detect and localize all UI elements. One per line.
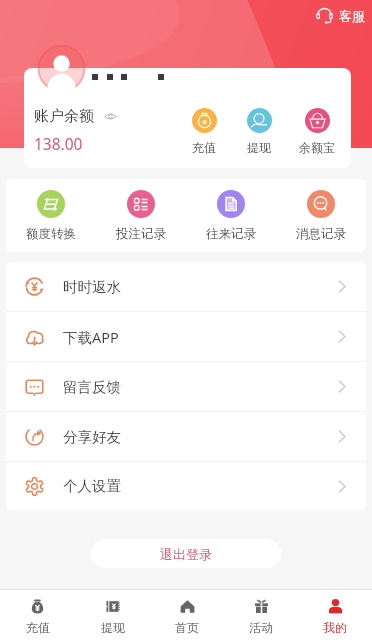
staticText: 下载APP xyxy=(63,327,119,347)
button[interactable]: 个人设置 xyxy=(6,462,366,510)
staticText: 首页 xyxy=(175,620,199,635)
staticText: 退出登录 xyxy=(160,546,212,562)
button[interactable]: 下载APP xyxy=(6,312,366,362)
button[interactable]: 客服 xyxy=(311,2,368,29)
button[interactable]: 充值 xyxy=(182,108,226,155)
button[interactable]: 首页 xyxy=(150,590,224,642)
staticText: 投注记录 xyxy=(116,226,166,242)
button[interactable]: 留言反馈 xyxy=(6,362,366,412)
staticText: 充值 xyxy=(192,140,216,155)
button[interactable]: 退出登录 xyxy=(91,539,281,568)
staticText: 往来记录 xyxy=(206,226,256,242)
staticText: 余额宝 xyxy=(299,140,335,155)
button[interactable]: 活动 xyxy=(224,590,298,642)
staticText: 138.00 xyxy=(34,133,83,154)
staticText: 留言反馈 xyxy=(63,378,121,396)
staticText: 活动 xyxy=(249,620,273,635)
staticText: 充值 xyxy=(26,620,50,635)
staticText: 我的 xyxy=(323,620,347,635)
staticText: 额度转换 xyxy=(26,226,76,242)
button[interactable]: 余额宝 xyxy=(295,108,339,155)
staticText: 提现 xyxy=(247,140,271,155)
button[interactable]: 消息记录 xyxy=(276,179,366,252)
staticText: 提现 xyxy=(101,620,125,635)
staticText: 账户余额 xyxy=(34,107,94,126)
button[interactable]: 分享好友 xyxy=(6,412,366,462)
staticText: 时时返水 xyxy=(63,278,121,296)
staticText: 消息记录 xyxy=(296,226,346,242)
button[interactable]: 时时返水 xyxy=(6,262,366,312)
button[interactable]: 投注记录 xyxy=(96,179,186,252)
button[interactable]: 提现 xyxy=(237,108,281,155)
button[interactable]: 我的 xyxy=(298,590,372,642)
button[interactable]: 额度转换 xyxy=(6,179,96,252)
staticText: 客服 xyxy=(339,8,365,24)
button[interactable]: 往来记录 xyxy=(186,179,276,252)
button[interactable]: 充值 xyxy=(0,590,75,642)
staticText: 个人设置 xyxy=(63,477,121,495)
button[interactable]: 提现 xyxy=(75,590,150,642)
staticText: 分享好友 xyxy=(63,428,121,446)
